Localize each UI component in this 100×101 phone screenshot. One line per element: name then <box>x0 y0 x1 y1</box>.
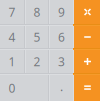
button[interactable]: 9 <box>50 0 73 24</box>
button[interactable]: 7 <box>0 0 24 24</box>
staticText: 3 <box>58 53 65 69</box>
button[interactable]: 2 <box>26 50 48 73</box>
staticText: 5 <box>33 29 40 45</box>
button[interactable]: 5 <box>26 26 48 48</box>
staticText: 4 <box>8 29 15 45</box>
button[interactable]: . <box>50 75 73 101</box>
staticText: . <box>60 78 63 94</box>
button[interactable]: 0 <box>0 75 48 101</box>
button[interactable]: Equals <box>74 75 100 101</box>
button[interactable]: 6 <box>50 26 73 48</box>
staticText: 6 <box>58 29 65 45</box>
staticText: 1 <box>8 53 15 69</box>
button[interactable]: 8 <box>26 0 48 24</box>
staticText: 2 <box>33 53 40 69</box>
staticText: 0 <box>8 80 15 96</box>
button[interactable]: 4 <box>0 26 24 48</box>
button[interactable]: Multiply <box>74 0 100 24</box>
staticText: 7 <box>8 4 15 20</box>
button[interactable]: 3 <box>50 50 73 73</box>
staticText: 8 <box>33 4 40 20</box>
staticText: 9 <box>58 4 65 20</box>
button[interactable]: 1 <box>0 50 24 73</box>
button[interactable]: Subtract <box>74 26 100 48</box>
button[interactable]: Add <box>74 50 100 73</box>
